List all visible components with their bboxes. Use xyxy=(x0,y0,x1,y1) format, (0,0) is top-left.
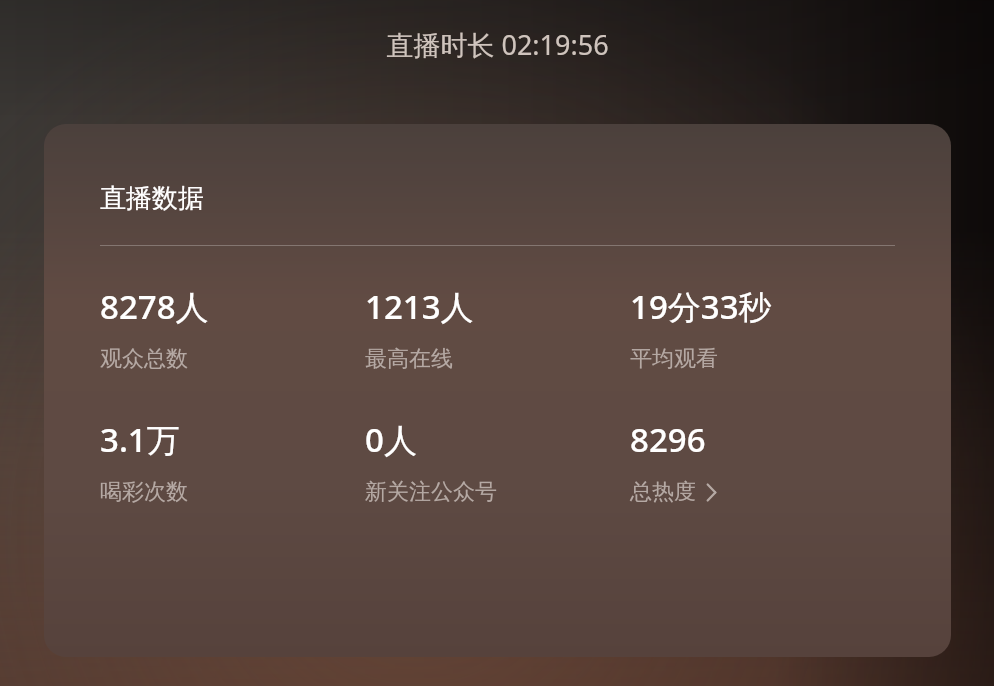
button[interactable]: 直播数据 xyxy=(44,124,951,657)
staticText: 直播数据 xyxy=(100,182,204,215)
staticText: 平均观看 xyxy=(630,345,718,373)
staticText: 观众总数 xyxy=(100,345,188,373)
staticText: 8278人 xyxy=(100,284,209,329)
staticText: 新关注公众号 xyxy=(365,478,497,506)
staticText: 1213人 xyxy=(365,284,474,329)
staticText: 8296 xyxy=(630,417,706,462)
button[interactable]: 19分33秒 xyxy=(630,284,895,373)
button[interactable]: 8278人 xyxy=(100,284,365,373)
button[interactable]: 总热度详情 xyxy=(630,417,895,506)
staticText: 直播时长 02:19:56 xyxy=(386,26,609,63)
staticText: 总热度 xyxy=(630,478,696,506)
button[interactable]: 1213人 xyxy=(365,284,630,373)
staticText: 3.1万 xyxy=(100,417,180,462)
button[interactable]: 3.1万 xyxy=(100,417,365,506)
staticText: 0人 xyxy=(365,417,417,462)
staticText: 19分33秒 xyxy=(630,284,772,329)
staticText: 喝彩次数 xyxy=(100,478,188,506)
staticText: 最高在线 xyxy=(365,345,453,373)
button[interactable]: 0人 xyxy=(365,417,630,506)
